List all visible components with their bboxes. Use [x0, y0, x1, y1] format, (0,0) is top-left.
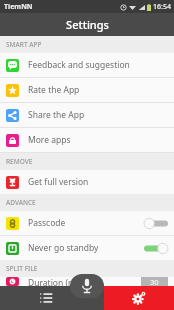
button[interactable]: List — [0, 286, 104, 310]
staticText: Never go standby — [28, 242, 144, 254]
button[interactable]: Settings — [104, 286, 174, 310]
staticText: More apps — [28, 134, 168, 146]
button[interactable]: 30 — [141, 277, 168, 286]
staticText: 16:54 — [153, 2, 171, 12]
button[interactable] — [144, 242, 168, 255]
staticText: Settings — [66, 17, 109, 32]
button[interactable] — [144, 217, 168, 230]
staticText: TiemNN — [4, 2, 33, 12]
staticText: SPLIT FILE — [6, 264, 38, 273]
staticText: Passcode — [28, 217, 144, 229]
button[interactable]: Duration (min) — [0, 277, 174, 286]
staticText: 30 — [150, 277, 159, 286]
button[interactable]: Rate the App — [0, 78, 174, 103]
staticText: SMART APP — [6, 40, 42, 49]
staticText: Rate the App — [28, 84, 168, 96]
staticText: Duration (min) — [28, 277, 141, 286]
button[interactable]: Share the App — [0, 103, 174, 128]
button[interactable]: Passcode — [0, 211, 174, 236]
button[interactable]: Record — [70, 274, 104, 298]
button[interactable]: Never go standby — [0, 236, 174, 260]
staticText: REMOVE — [6, 157, 33, 166]
button[interactable]: More apps — [0, 128, 174, 153]
staticText: Feedback and suggestion — [28, 59, 168, 71]
staticText: ADVANCE — [6, 198, 36, 207]
staticText: Get full version — [28, 176, 168, 188]
button[interactable]: Get full version — [0, 170, 174, 194]
button[interactable]: Feedback and suggestion — [0, 53, 174, 78]
staticText: Share the App — [28, 109, 168, 121]
